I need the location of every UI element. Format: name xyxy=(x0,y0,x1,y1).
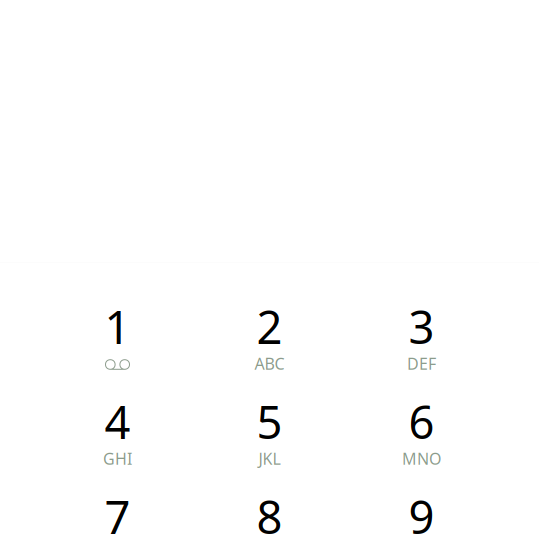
staticText: MNO xyxy=(402,448,441,469)
staticText: 9 xyxy=(408,486,434,539)
button[interactable]: 2 A B C xyxy=(193,258,345,353)
staticText: JKL xyxy=(258,448,280,469)
staticText: 3 xyxy=(408,296,434,357)
button[interactable]: 5 J K L xyxy=(193,353,345,448)
button[interactable]: 9 W X Y Z xyxy=(345,448,497,539)
staticText: 8 xyxy=(256,486,282,539)
button[interactable]: 8 T U V xyxy=(193,448,345,539)
button[interactable]: 4 G H I xyxy=(41,353,193,448)
button[interactable]: 3 D E F xyxy=(345,258,497,353)
button[interactable]: 1 voicemail xyxy=(41,258,193,353)
staticText: ABC xyxy=(254,353,284,374)
button[interactable]: 7 P Q R S xyxy=(41,448,193,539)
staticText: GHI xyxy=(103,448,132,469)
staticText: 6 xyxy=(408,391,434,452)
staticText: 2 xyxy=(256,296,282,357)
staticText: DEF xyxy=(407,353,436,374)
staticText: 4 xyxy=(104,391,130,452)
staticText: 5 xyxy=(256,391,282,452)
button[interactable]: 6 M N O xyxy=(345,353,497,448)
staticText: 1 xyxy=(104,296,130,357)
staticText: 7 xyxy=(104,486,130,539)
